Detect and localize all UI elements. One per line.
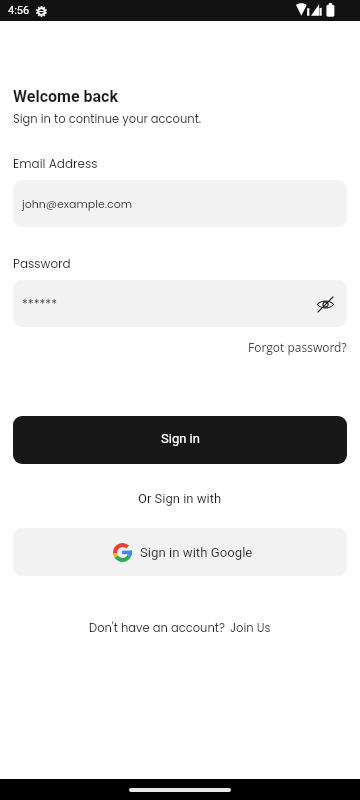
staticText: Email Address [13, 155, 98, 172]
staticText: Welcome back [13, 87, 119, 106]
staticText: Forgot password? [248, 339, 347, 355]
button[interactable]: Forgot password? [248, 339, 347, 355]
staticText: Sign in with Google [140, 545, 253, 560]
staticText: john@example.com [22, 196, 133, 211]
staticText: 4:56 [8, 4, 30, 17]
staticText: Sign in to continue your account. [13, 111, 202, 127]
staticText: Or Sign in with [138, 491, 222, 506]
staticText: Password [13, 255, 71, 272]
button[interactable]: Join Us [230, 620, 271, 636]
button[interactable]: Sign in with Google [13, 528, 347, 576]
button[interactable]: Show password [312, 291, 338, 317]
staticText: Sign in [161, 431, 200, 446]
button[interactable]: john@example.com [13, 180, 347, 227]
staticText: ****** [22, 295, 57, 312]
staticText: Don't have an account? [89, 620, 225, 636]
staticText: Join Us [230, 620, 271, 636]
button[interactable]: Sign in [13, 416, 347, 464]
button[interactable]: ****** [13, 280, 347, 327]
